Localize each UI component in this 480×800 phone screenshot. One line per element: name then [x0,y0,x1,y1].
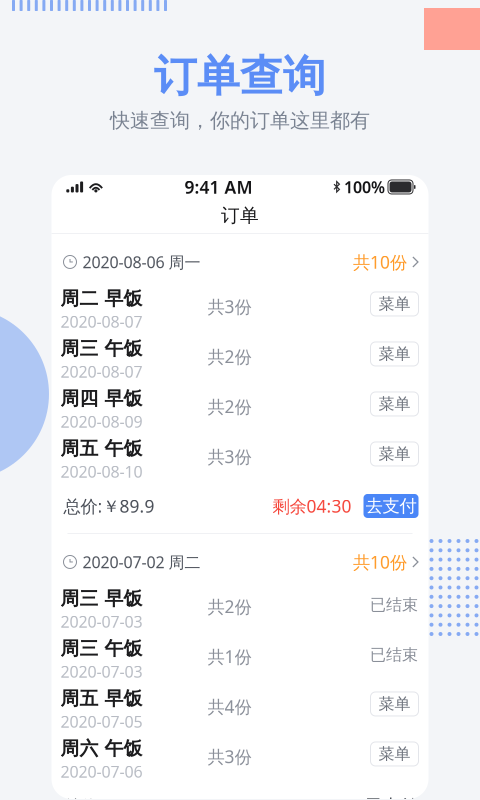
staticText: 9:41 AM [184,175,252,198]
staticText: 2020-08-07 [60,361,142,382]
staticText: 周三 早饭 [60,587,142,610]
button[interactable]: 菜单 [370,442,418,466]
button[interactable]: 周二 早饭 [51,285,428,335]
staticText: 周六 午饭 [60,737,142,760]
staticText: 共2份 [207,345,251,368]
staticText: 已结束 [370,595,418,615]
staticText: 2020-07-03 [60,611,142,632]
button[interactable]: 共10份 [353,244,418,279]
staticText: 共3份 [207,445,251,468]
staticText: 总价:￥89.9 [63,494,154,517]
staticText: 已支付 [365,795,416,800]
staticText: 总价:￥89.9 [63,794,154,800]
button[interactable]: 共10份 [353,544,418,579]
staticText: 共10份 [353,550,407,573]
staticText: 订单查询 [154,50,326,102]
staticText: 订单 [221,204,259,227]
staticText: 周五 午饭 [60,437,142,460]
button[interactable]: 菜单 [370,742,418,766]
button[interactable]: 去支付 [363,494,418,518]
staticText: 共3份 [207,745,251,768]
staticText: 2020-07-02 周二 [82,551,200,572]
button[interactable]: 菜单 [370,692,418,716]
staticText: 周三 午饭 [60,337,142,360]
staticText: 2020-08-06 周一 [82,251,200,272]
button[interactable]: 菜单 [370,342,418,366]
button[interactable]: 周三 午饭 [51,335,428,385]
staticText: 2020-07-03 [60,661,142,682]
button[interactable]: 菜单 [370,292,418,316]
staticText: 共4份 [207,695,251,718]
button[interactable]: 周五 午饭 [51,435,428,485]
button[interactable]: 周三 早饭 [51,585,428,635]
button[interactable]: 周三 午饭 [51,635,428,685]
button[interactable]: 周四 早饭 [51,385,428,435]
staticText: 共2份 [207,395,251,418]
staticText: 已结束 [370,645,418,665]
staticText: 剩余04:30 [272,494,351,517]
staticText: 菜单 [378,744,410,764]
staticText: 2020-08-10 [60,461,142,482]
staticText: 快速查询，你的订单这里都有 [110,108,370,133]
staticText: 菜单 [378,444,410,464]
staticText: 2020-07-05 [60,711,142,732]
staticText: 周二 早饭 [60,287,142,310]
button[interactable]: 周六 午饭 [51,735,428,785]
staticText: 共2份 [207,595,251,618]
staticText: 周四 早饭 [60,387,142,410]
staticText: 周五 早饭 [60,687,142,710]
staticText: 去支付 [365,495,416,517]
staticText: 菜单 [378,394,410,414]
staticText: 菜单 [378,294,410,314]
button[interactable]: 菜单 [370,392,418,416]
staticText: 100% [344,176,385,197]
staticText: 菜单 [378,694,410,714]
staticText: 共10份 [353,250,407,273]
staticText: 共1份 [207,645,251,668]
staticText: 共3份 [207,295,251,318]
staticText: 2020-08-07 [60,311,142,332]
button[interactable]: 周五 早饭 [51,685,428,735]
staticText: 2020-08-09 [60,411,142,432]
staticText: 菜单 [378,344,410,364]
staticText: 2020-07-06 [60,761,142,782]
staticText: 周三 午饭 [60,637,142,660]
